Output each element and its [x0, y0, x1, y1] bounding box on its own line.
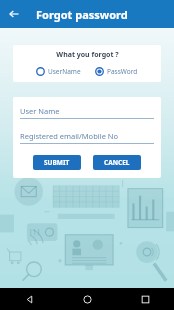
staticText: SUBMIT: [44, 158, 70, 167]
button[interactable]: PassWord: [95, 67, 138, 76]
button[interactable]: SUBMIT: [33, 155, 81, 170]
button[interactable]: Registered email/Mobile No: [20, 131, 154, 144]
button[interactable]: Home: [58, 288, 116, 310]
button[interactable]: Back: [0, 0, 28, 28]
staticText: UserName: [48, 67, 81, 76]
button[interactable]: UserName: [36, 67, 81, 76]
button[interactable]: User Name: [20, 106, 154, 119]
button[interactable]: Back: [0, 288, 58, 310]
button[interactable]: Recents: [116, 288, 174, 310]
staticText: User Name: [20, 106, 60, 116]
staticText: CANCEL: [104, 158, 130, 167]
staticText: Registered email/Mobile No: [20, 131, 119, 141]
staticText: PassWord: [107, 67, 138, 76]
staticText: What you forgot ?: [56, 50, 119, 60]
button[interactable]: CANCEL: [93, 155, 141, 170]
staticText: Forgot password: [36, 7, 128, 22]
